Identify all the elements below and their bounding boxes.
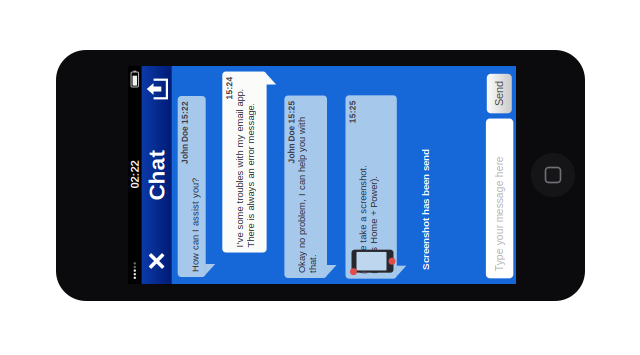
staticText: (Press Home + Power). — [223, 222, 321, 232]
staticText: 15:25 — [374, 201, 397, 210]
staticText: Okay no problem, I can help you with — [224, 150, 380, 160]
staticText: Please take a screenshot. — [223, 211, 332, 221]
staticText: I've some troubles with my email app. — [249, 87, 408, 98]
staticText: How can I assist you? — [225, 43, 319, 53]
staticText: There is always an error message. — [249, 98, 394, 109]
staticText: Screenshot has been send — [227, 273, 348, 284]
staticText: John Doe 15:25 — [333, 140, 396, 149]
staticText: that. — [224, 161, 243, 171]
